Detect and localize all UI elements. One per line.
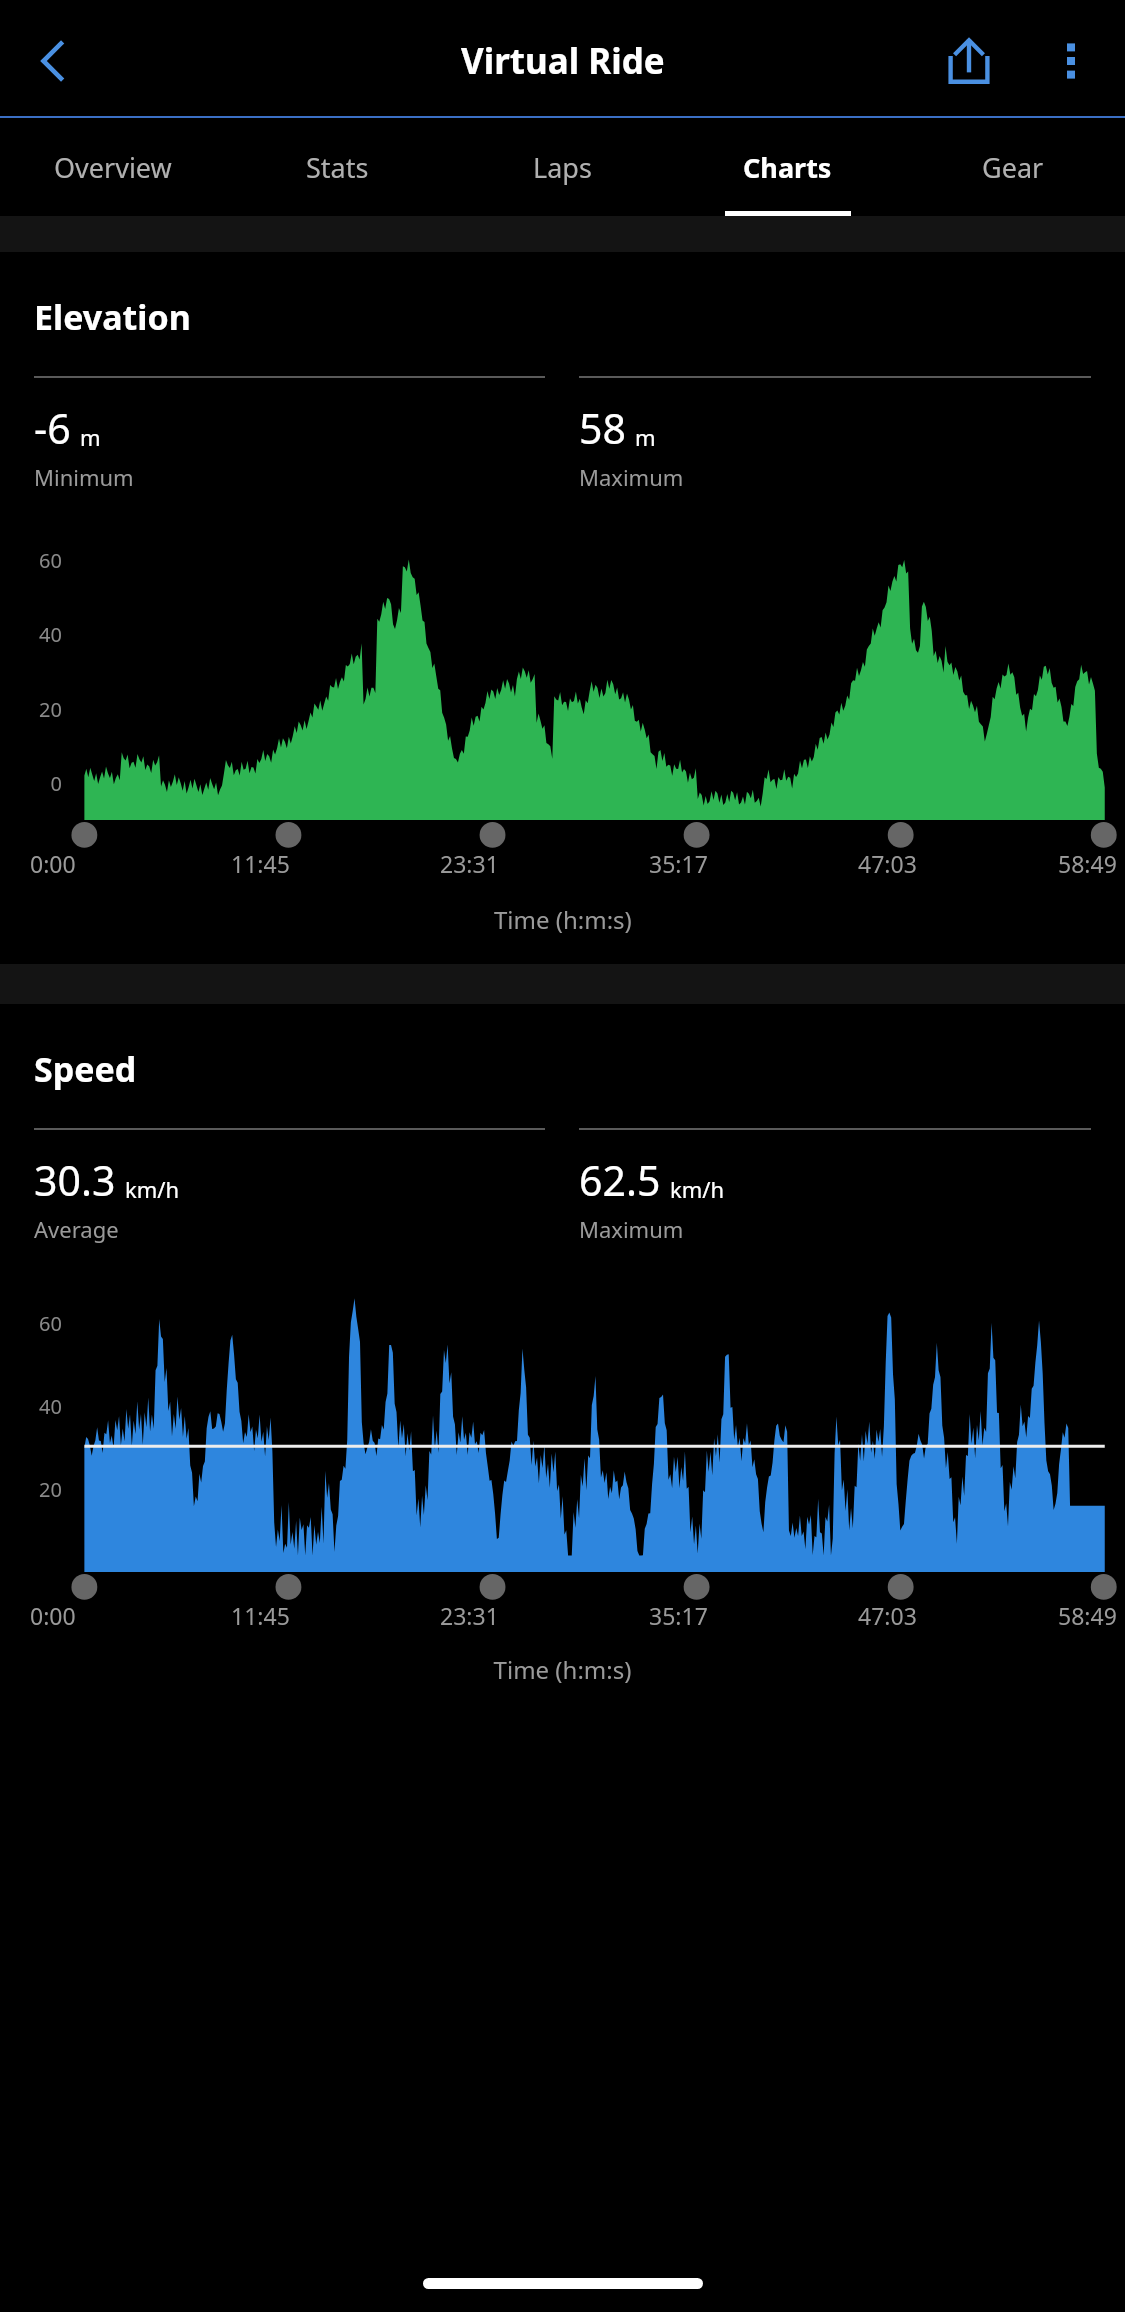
staticText: Minimum (34, 462, 134, 492)
staticText: Time (h:m:s) (0, 1653, 1125, 1686)
staticText: Gear (982, 149, 1044, 186)
staticText: 40 (0, 1393, 62, 1420)
staticText: 35:17 (649, 1600, 708, 1631)
button[interactable]: Charts (675, 118, 900, 216)
staticText: 60 (0, 1310, 62, 1337)
staticText: Laps (533, 149, 592, 186)
staticText: Overview (54, 149, 172, 186)
button[interactable]: Stats (225, 118, 450, 216)
staticText: 60 (0, 547, 62, 574)
staticText: Maximum (579, 462, 684, 492)
staticText: Time (h:m:s) (494, 903, 632, 936)
button[interactable]: Share (921, 16, 1017, 106)
staticText: 20 (0, 1476, 62, 1503)
button[interactable]: Laps (450, 118, 675, 216)
staticText: Average (34, 1214, 119, 1244)
staticText: m (635, 422, 656, 452)
button[interactable]: Overview (0, 118, 225, 216)
staticText: Charts (743, 149, 832, 186)
staticText: 30.3 (34, 1152, 116, 1208)
staticText: 62.5 (579, 1152, 661, 1208)
staticText: 58:49 (1058, 1600, 1117, 1631)
staticText: 0:00 (30, 848, 76, 879)
staticText: Elevation (34, 294, 191, 340)
staticText: 0:00 (30, 1600, 76, 1631)
staticText: 47:03 (858, 1600, 917, 1631)
staticText: 58 (579, 400, 626, 456)
staticText: -6 (34, 400, 71, 456)
button[interactable]: Gear (900, 118, 1125, 216)
staticText: 20 (0, 696, 62, 723)
staticText: 23:31 (440, 848, 499, 879)
staticText: 11:45 (231, 1600, 290, 1631)
staticText: Stats (306, 149, 369, 186)
staticText: Speed (34, 1046, 137, 1092)
staticText: 47:03 (858, 848, 917, 879)
staticText: Virtual Ride (461, 37, 665, 85)
staticText: m (80, 422, 101, 452)
staticText: Maximum (579, 1214, 684, 1244)
staticText: 11:45 (231, 848, 290, 879)
staticText: 35:17 (649, 848, 708, 879)
staticText: km/h (125, 1174, 180, 1204)
staticText: 40 (0, 621, 62, 648)
staticText: 58:49 (1058, 848, 1117, 879)
staticText: 0 (0, 770, 62, 797)
staticText: km/h (670, 1174, 725, 1204)
button[interactable]: More options (1023, 16, 1119, 106)
button[interactable]: Back (6, 16, 102, 106)
staticText: 23:31 (440, 1600, 499, 1631)
